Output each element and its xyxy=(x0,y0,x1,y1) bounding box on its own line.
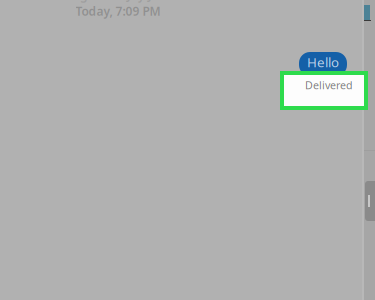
staticText: Today, 7:09 PM xyxy=(75,3,160,19)
staticText: Delivered xyxy=(305,78,353,92)
staticText: Hello xyxy=(307,53,339,71)
staticText: iMessage with Jay Johnson xyxy=(40,0,196,3)
